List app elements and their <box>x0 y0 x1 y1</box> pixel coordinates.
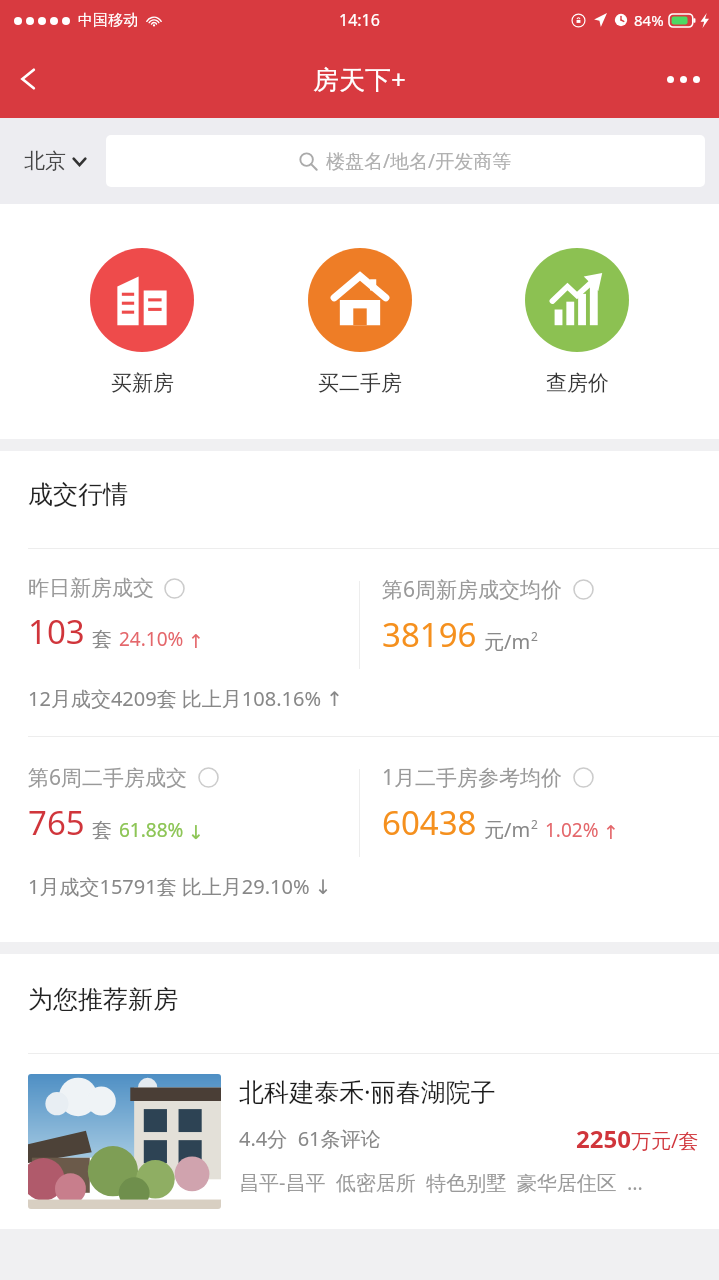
button[interactable]: 北京 <box>14 142 96 180</box>
staticText: 买新房 <box>111 370 174 396</box>
staticText: 买二手房 <box>318 370 402 396</box>
staticText: 14:16 <box>339 9 380 31</box>
staticText: 中国移动 <box>78 11 138 30</box>
staticText: 查房价 <box>546 370 609 396</box>
staticText: 第6周二手房成交 <box>28 763 188 792</box>
staticText: 103 <box>28 609 85 654</box>
staticText: 1月成交15791套 比上月29.10% ↓ <box>28 873 332 900</box>
button[interactable]: 查房价 <box>502 242 652 402</box>
staticText: 2 <box>531 816 538 832</box>
button[interactable]: 第6周新房成交均价 <box>382 575 719 657</box>
staticText: 楼盘名/地名/开发商等 <box>326 148 512 174</box>
staticText: 昌平-昌平 低密居所 特色别墅 豪华居住区 … <box>239 1169 643 1196</box>
staticText: 北京 <box>24 148 66 174</box>
button[interactable]: Back <box>0 50 58 108</box>
button[interactable]: 买二手房 <box>285 242 435 402</box>
other: Info <box>198 767 219 788</box>
staticText: 北科建泰禾·丽春湖院子 <box>239 1074 496 1108</box>
other: Info <box>573 767 594 788</box>
staticText: 2 <box>531 628 538 644</box>
staticText: 昨日新房成交 <box>28 575 154 601</box>
staticText: 房天下+ <box>313 61 406 97</box>
staticText: 1.02% <box>545 817 599 843</box>
staticText: 为您推荐新房 <box>28 984 178 1015</box>
staticText: 765 <box>28 800 85 845</box>
staticText: ↓ <box>188 821 204 843</box>
staticText: 60438 <box>382 800 477 845</box>
button[interactable]: More options <box>647 50 719 108</box>
button[interactable]: 北科建泰禾·丽春湖院子 <box>0 1074 719 1209</box>
button[interactable]: 买新房 <box>67 242 217 402</box>
button[interactable]: 昨日新房成交 <box>28 575 359 654</box>
staticText: ↑ <box>188 630 204 652</box>
staticText: 第6周新房成交均价 <box>382 575 563 604</box>
staticText: 套 <box>92 818 112 843</box>
button[interactable]: 第6周二手房成交 <box>28 763 359 845</box>
staticText: 4.4分 61条评论 <box>239 1125 381 1152</box>
staticText: 万元/套 <box>631 1127 699 1154</box>
staticText: 12月成交4209套 比上月108.16% ↑ <box>28 685 343 712</box>
staticText: 2250 <box>576 1122 631 1155</box>
staticText: 84% <box>634 10 664 30</box>
staticText: ↑ <box>603 821 619 843</box>
button[interactable]: 楼盘名/地名/开发商等 <box>106 135 705 187</box>
staticText: 元/m <box>484 816 531 843</box>
staticText: 24.10% <box>119 626 184 652</box>
other: Info <box>164 578 185 599</box>
staticText: 61.88% <box>119 817 184 843</box>
button[interactable]: 1月二手房参考均价 <box>382 763 719 845</box>
staticText: 元/m <box>484 628 531 655</box>
staticText: 38196 <box>382 612 477 657</box>
other: Info <box>573 579 594 600</box>
staticText: 1月二手房参考均价 <box>382 763 563 792</box>
staticText: 成交行情 <box>28 479 128 510</box>
staticText: 套 <box>92 627 112 652</box>
